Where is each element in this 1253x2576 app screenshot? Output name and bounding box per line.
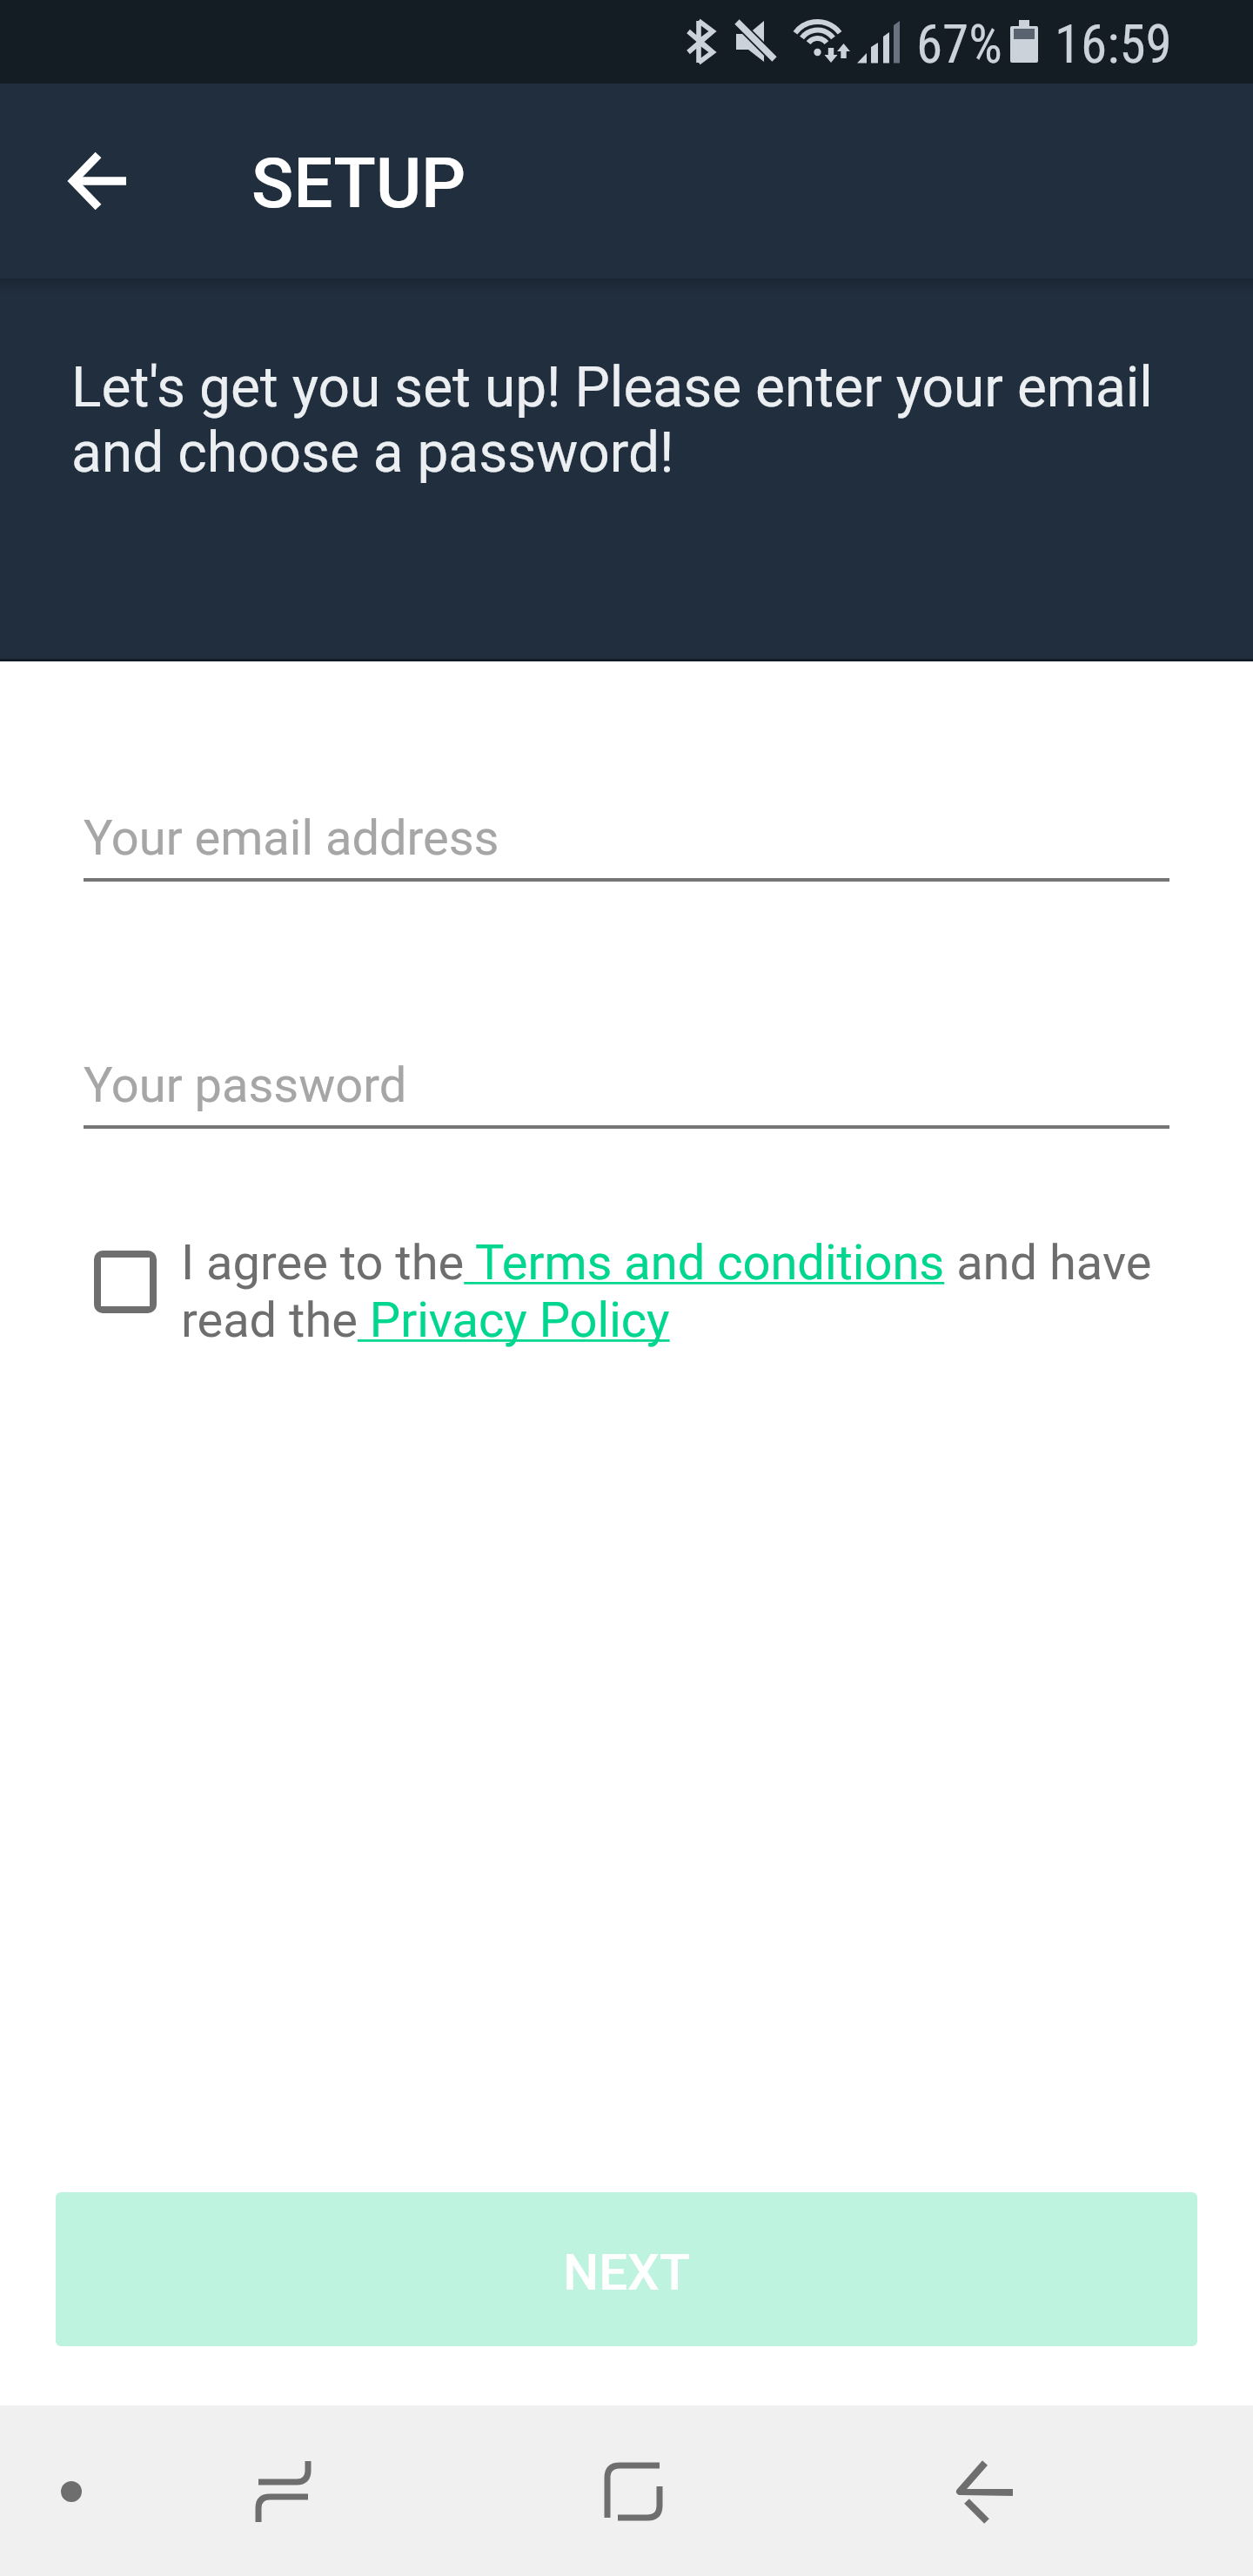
button[interactable]: NEXT <box>56 2192 1197 2346</box>
staticText: I agree to the Terms and conditions and … <box>181 1234 1192 1349</box>
button[interactable]: Back <box>953 2456 1022 2526</box>
staticText: 16:59 <box>1055 13 1172 75</box>
button[interactable]: Recent apps <box>251 2454 318 2529</box>
button[interactable]: I agree to the terms and conditions <box>94 1251 157 1313</box>
button[interactable]: Home <box>600 2459 670 2528</box>
button[interactable]: Navigate up <box>56 132 153 230</box>
staticText: Let's get you set up! Please enter your … <box>71 355 1192 486</box>
staticText: Your email address <box>84 809 499 867</box>
staticText: 67% <box>916 13 1002 75</box>
staticText: SETUP <box>251 143 466 225</box>
staticText: NEXT <box>563 2243 690 2302</box>
staticText: Your password <box>84 1057 407 1114</box>
